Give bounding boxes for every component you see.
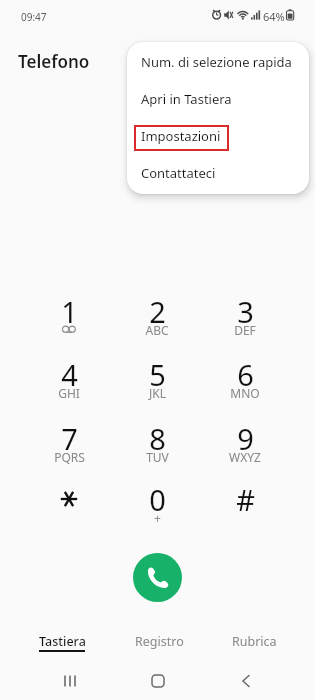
button[interactable]: Impostazioni — [127, 116, 309, 153]
staticText: WXYZ — [229, 449, 261, 465]
button[interactable]: Registro — [115, 626, 203, 660]
button[interactable]: Home — [136, 662, 180, 700]
button[interactable]: Tasto 8 — [125, 419, 189, 471]
button[interactable]: Tasto 3 — [213, 292, 277, 344]
staticText: Rubrica — [232, 633, 277, 650]
staticText: Impostazioni — [141, 127, 221, 145]
staticText: ABC — [145, 322, 169, 338]
staticText: PQRS — [54, 449, 85, 465]
staticText: 6 — [237, 355, 254, 394]
staticText: GHI — [58, 385, 80, 401]
staticText: # — [236, 480, 255, 519]
staticText: 5 — [149, 355, 166, 394]
staticText: 2 — [149, 292, 166, 331]
staticText: 3 — [237, 292, 254, 331]
button[interactable]: Tasto 7 — [37, 419, 101, 471]
staticText: Telefono — [18, 50, 90, 73]
button[interactable]: Chiama — [133, 553, 182, 602]
button[interactable]: Indietro — [224, 662, 268, 700]
button[interactable]: Tasto 2 — [125, 292, 189, 344]
staticText: 1 — [61, 292, 78, 331]
staticText: Num. di selezione rapida — [141, 53, 292, 71]
button[interactable]: Recenti — [48, 662, 92, 700]
button[interactable]: Tastiera — [18, 626, 106, 660]
staticText: Tastiera — [39, 633, 86, 650]
button[interactable]: Num. di selezione rapida — [127, 42, 309, 79]
staticText: 7 — [61, 419, 78, 458]
staticText: MNO — [230, 385, 260, 401]
staticText: Apri in Tastiera — [141, 90, 232, 108]
button[interactable]: Tasto 6 — [213, 355, 277, 407]
staticText: Contattateci — [141, 164, 216, 182]
staticText: 09:47 — [21, 10, 47, 24]
staticText: 4 — [61, 355, 78, 394]
staticText: + — [154, 510, 161, 526]
staticText: DEF — [234, 322, 256, 338]
button[interactable]: Tasto # — [213, 480, 277, 532]
staticText: JKL — [149, 385, 166, 401]
button[interactable]: Contattateci — [127, 153, 309, 190]
button[interactable]: Tasto 1 — [37, 292, 101, 344]
button[interactable]: Apri in Tastiera — [127, 79, 309, 116]
staticText: Registro — [135, 633, 184, 650]
staticText: 9 — [237, 419, 254, 458]
staticText: 0 — [149, 480, 166, 519]
button[interactable]: Tasto 9 — [213, 419, 277, 471]
button[interactable]: Tasto 0 — [125, 480, 189, 532]
staticText: TUV — [146, 449, 169, 465]
staticText: 8 — [149, 419, 166, 458]
button[interactable]: Tasto * — [37, 480, 101, 532]
button[interactable]: Tasto 4 — [37, 355, 101, 407]
staticText: 64% — [263, 9, 285, 24]
button[interactable]: Rubrica — [210, 626, 298, 660]
button[interactable]: Tasto 5 — [125, 355, 189, 407]
